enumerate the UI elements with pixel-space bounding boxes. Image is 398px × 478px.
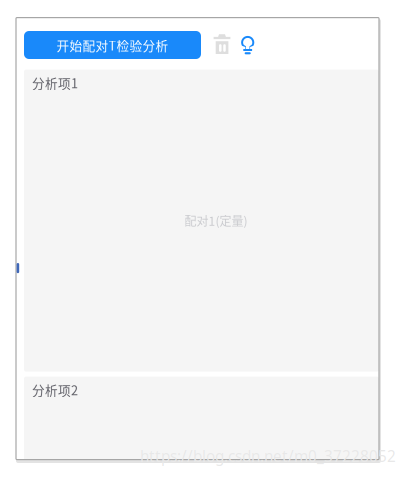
staticText: 分析项2	[32, 381, 78, 399]
staticText: https://blog.csdn.net/m0_37228052	[140, 445, 396, 466]
staticText: 分析项1	[32, 74, 78, 92]
staticText: 配对1(定量)	[184, 212, 247, 229]
button[interactable]: 开始配对T检验分析	[24, 31, 201, 59]
button[interactable]: Hint	[237, 32, 258, 58]
button[interactable]: Delete	[210, 30, 234, 58]
staticText: 开始配对T检验分析	[56, 36, 168, 54]
